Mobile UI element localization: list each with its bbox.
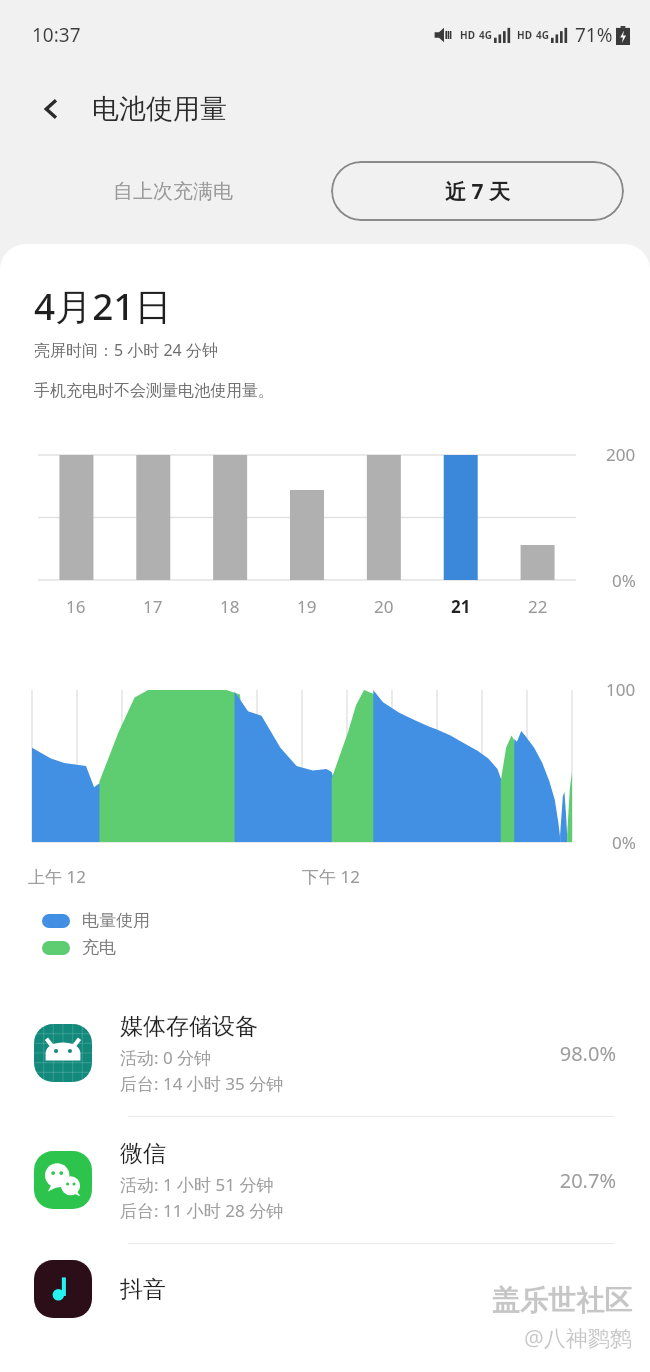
staticText: HD [517, 28, 532, 42]
staticText: 200 [606, 443, 636, 466]
staticText: 10:37 [32, 22, 81, 48]
staticText: @八神鹨鹩 [524, 1322, 632, 1352]
staticText: 上午 12 [28, 865, 86, 888]
staticText: 98.0% [559, 1040, 616, 1067]
staticText: 100 [606, 678, 636, 701]
staticText: 19 [297, 595, 317, 618]
staticText: 后台: 11 小时 28 分钟 [120, 1199, 284, 1222]
staticText: 盖乐世社区 [492, 1283, 632, 1318]
staticText: 0% [612, 831, 636, 854]
staticText: 充电 [82, 937, 116, 958]
staticText: 活动: 1 小时 51 分钟 [120, 1173, 274, 1196]
staticText: 0% [612, 569, 636, 592]
staticText: 手机充电时不会测量电池使用量。 [34, 381, 274, 401]
button[interactable]: 自上次充满电 [26, 161, 319, 221]
staticText: 近 7 天 [445, 177, 510, 206]
staticText: 18 [220, 595, 240, 618]
button[interactable]: 媒体存储设备 [0, 990, 650, 1116]
staticText: 20.7% [559, 1167, 616, 1194]
staticText: 后台: 14 小时 35 分钟 [120, 1072, 284, 1095]
staticText: 4G [479, 28, 492, 42]
staticText: 4月21日 [34, 280, 172, 331]
staticText: 活动: 0 分钟 [120, 1046, 212, 1069]
staticText: 17 [143, 595, 163, 618]
button[interactable]: 抖音 [0, 1244, 650, 1334]
staticText: 下午 12 [302, 865, 360, 888]
button[interactable]: 微信 [0, 1117, 650, 1243]
staticText: 16 [66, 595, 86, 618]
button[interactable]: 近 7 天 [331, 161, 624, 221]
staticText: 电量使用 [82, 910, 150, 931]
staticText: 21 [451, 595, 471, 618]
staticText: 22 [528, 595, 548, 618]
staticText: 亮屏时间：5 小时 24 分钟 [34, 339, 218, 361]
staticText: HD [460, 28, 475, 42]
staticText: 抖音 [120, 1275, 166, 1304]
staticText: 微信 [120, 1139, 166, 1168]
staticText: 媒体存储设备 [120, 1012, 258, 1041]
button[interactable]: Back [28, 85, 76, 133]
staticText: 电池使用量 [92, 92, 227, 126]
staticText: 20 [374, 595, 394, 618]
staticText: 71% [575, 22, 613, 48]
staticText: 自上次充满电 [113, 179, 233, 204]
staticText: 4G [536, 28, 549, 42]
